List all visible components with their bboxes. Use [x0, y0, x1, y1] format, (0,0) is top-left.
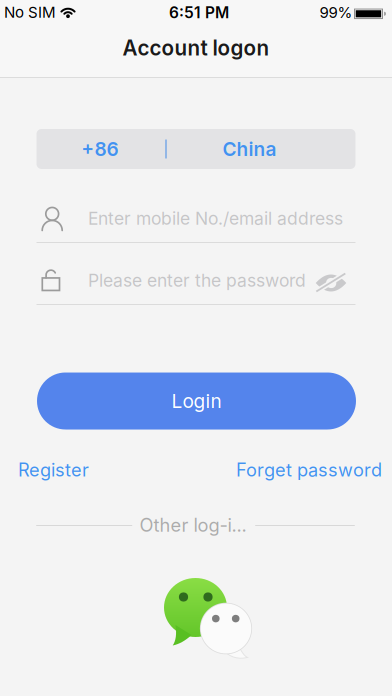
button[interactable]: Enter mobile No./email address [36, 191, 355, 243]
button[interactable]: Country code: +86 China [36, 129, 355, 169]
staticText: 6:51 PM [169, 3, 229, 22]
button[interactable]: Forget password [236, 459, 382, 481]
staticText: China [222, 137, 276, 161]
staticText: No SIM [4, 3, 56, 21]
staticText: Forget password [236, 459, 382, 481]
button[interactable]: Login [37, 372, 356, 429]
staticText: Please enter the password [88, 270, 306, 291]
staticText: 99% [319, 3, 352, 22]
staticText: Register [18, 459, 89, 481]
button[interactable]: Please enter the password [36, 253, 355, 305]
staticText: Login [171, 389, 221, 413]
button[interactable]: Show password [309, 266, 353, 300]
staticText: +86 [81, 137, 118, 161]
button[interactable]: Log in with WeChat [163, 578, 251, 659]
staticText: Account logon [122, 35, 269, 60]
button[interactable]: Register [18, 459, 89, 481]
staticText: Other log-i... [139, 514, 246, 536]
staticText: Enter mobile No./email address [88, 208, 343, 229]
